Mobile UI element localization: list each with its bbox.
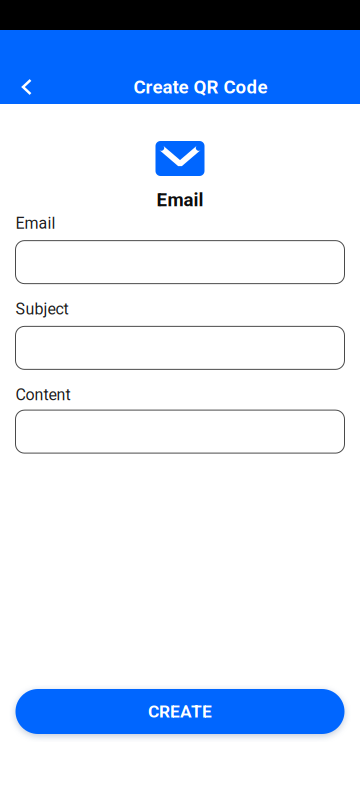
staticText: Content [15, 385, 70, 404]
button[interactable] [15, 410, 344, 453]
button[interactable]: Back [0, 63, 48, 111]
staticText: Email [15, 214, 55, 233]
staticText: CREATE [148, 701, 212, 722]
button[interactable] [15, 241, 344, 284]
staticText: Email [156, 189, 203, 211]
staticText: Create QR Code [133, 76, 267, 98]
button[interactable]: CREATE [15, 689, 344, 734]
button[interactable] [15, 326, 344, 369]
staticText: Subject [15, 300, 68, 318]
